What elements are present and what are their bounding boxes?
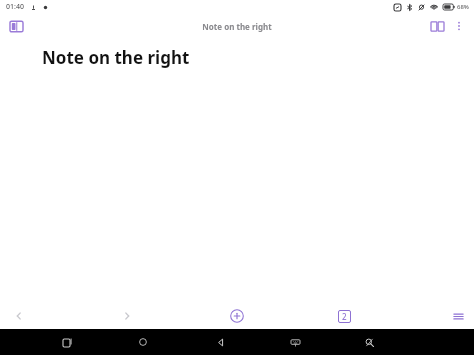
staticText: 2: [342, 311, 347, 322]
button[interactable]: Previous page: [8, 305, 30, 327]
button[interactable]: Recent apps: [56, 331, 78, 353]
button[interactable]: Switch keyboard: [284, 331, 306, 353]
button[interactable]: Toggle side panel: [6, 16, 26, 36]
button[interactable]: Add page: [225, 304, 249, 328]
staticText: Note on the right: [202, 21, 272, 32]
staticText: 01:40: [6, 2, 24, 12]
button[interactable]: Back: [210, 331, 232, 353]
staticText: 68%: [457, 3, 469, 11]
button[interactable]: More options: [448, 15, 470, 37]
staticText: Note on the right: [42, 46, 190, 69]
button[interactable]: Notebooks: [426, 15, 448, 37]
button[interactable]: Home: [132, 331, 154, 353]
button[interactable]: Next page: [116, 305, 138, 327]
button[interactable]: Menu: [447, 305, 469, 327]
button[interactable]: 2: [338, 310, 351, 323]
button[interactable]: Screenshot: [358, 331, 380, 353]
